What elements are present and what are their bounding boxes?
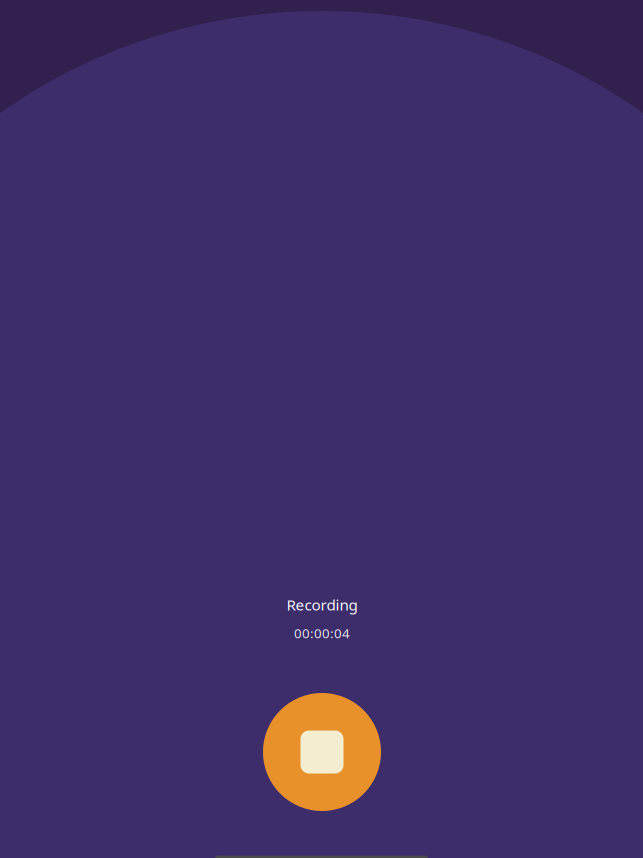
staticText: 00:00:04 — [294, 624, 350, 642]
staticText: Recording — [286, 594, 357, 615]
button[interactable]: Stop recording — [263, 693, 381, 811]
